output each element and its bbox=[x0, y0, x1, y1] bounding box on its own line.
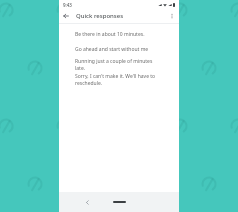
button[interactable]: Home bbox=[110, 195, 128, 209]
staticText: Be there in about 10 minutes. bbox=[75, 31, 145, 38]
button[interactable]: Go ahead and start without me bbox=[59, 42, 179, 57]
staticText: Running just a couple of minutes late. bbox=[75, 58, 163, 72]
button[interactable]: Sorry, I can't make it. We'll have to re… bbox=[59, 72, 179, 87]
staticText: Go ahead and start without me bbox=[75, 46, 149, 53]
button[interactable]: Running just a couple of minutes late. bbox=[59, 57, 179, 72]
button[interactable]: Back bbox=[81, 196, 93, 208]
button[interactable]: More options bbox=[165, 9, 179, 23]
staticText: 9:43 bbox=[63, 2, 72, 8]
staticText: Sorry, I can't make it. We'll have to re… bbox=[75, 73, 163, 87]
button[interactable]: Be there in about 10 minutes. bbox=[59, 27, 179, 42]
button[interactable]: Back bbox=[59, 9, 73, 23]
staticText: Quick responses bbox=[76, 12, 165, 20]
